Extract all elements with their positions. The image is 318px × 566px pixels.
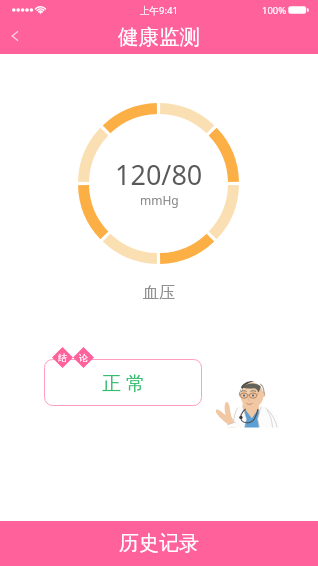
staticText: 结 [58,352,67,363]
staticText: 120/80 [115,156,203,193]
staticText: 上午9:41 [140,4,178,17]
staticText: 100% [262,4,287,17]
staticText: 正 常 [102,370,145,396]
staticText: mmHg [140,192,179,208]
staticText: 健康监测 [118,24,200,50]
staticText: 论 [79,352,88,363]
button[interactable]: 正 常 [44,359,202,406]
staticText: 历史记录 [119,531,199,556]
staticText: 血压 [0,283,318,303]
button[interactable]: Back [0,22,30,52]
button[interactable]: 历史记录 [0,521,318,566]
